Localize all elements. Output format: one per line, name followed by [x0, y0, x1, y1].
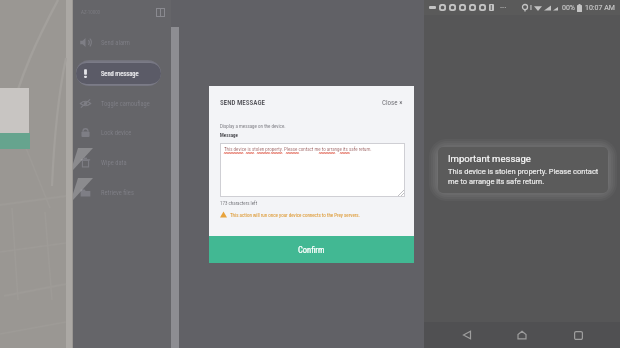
button[interactable]: Confirm: [209, 236, 414, 263]
staticText: This action will run once your device co…: [230, 212, 360, 218]
button[interactable]: Home: [509, 322, 535, 348]
staticText: I: [530, 4, 532, 12]
staticText: 173 characters left: [220, 200, 258, 206]
button[interactable]: Lock device: [73, 119, 171, 145]
button[interactable]: Recents: [565, 322, 591, 348]
staticText: Close ×: [382, 99, 403, 107]
staticText: This device is stolen property. Please c…: [448, 167, 599, 186]
button[interactable]: This device is stolen property. Please c…: [220, 143, 405, 197]
button[interactable]: Close ×: [382, 99, 403, 107]
staticText: ···: [500, 3, 507, 12]
button[interactable]: Send message: [73, 60, 171, 86]
button[interactable]: Wipe data: [73, 149, 171, 175]
staticText: This device is stolen property. Please c…: [224, 146, 372, 152]
button[interactable]: Send alarm: [73, 29, 171, 55]
staticText: AZ-10000: [81, 9, 101, 15]
button[interactable]: Back: [454, 322, 480, 348]
button[interactable]: Toggle camouflage: [73, 90, 171, 116]
staticText: 10:07 AM: [585, 4, 615, 12]
staticText: Display a message on the device.: [220, 123, 286, 129]
staticText: 00%: [562, 4, 575, 12]
staticText: Send alarm: [101, 39, 130, 47]
staticText: Message: [220, 132, 238, 138]
staticText: Toggle camouflage: [101, 100, 150, 108]
staticText: SEND MESSAGE: [220, 99, 266, 107]
staticText: Send message: [101, 70, 139, 78]
staticText: Confirm: [298, 245, 325, 255]
staticText: Important message: [448, 153, 531, 164]
button[interactable]: Retrieve files: [73, 179, 171, 205]
staticText: Lock device: [101, 129, 132, 137]
staticText: Retrieve files: [101, 189, 134, 197]
staticText: Wipe data: [101, 159, 127, 167]
